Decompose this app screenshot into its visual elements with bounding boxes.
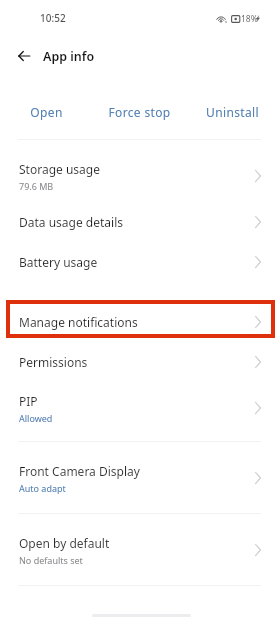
staticText: PIP [19,393,38,409]
button[interactable]: Open [0,97,93,127]
staticText: App info [43,48,95,65]
staticText: 18% [241,13,258,25]
staticText: 79.6 MB [19,180,54,192]
button[interactable]: Manage notifications [0,302,279,342]
button[interactable]: Force stop [93,97,186,127]
button[interactable]: Back [10,42,38,70]
staticText: Open by default [19,535,110,551]
button[interactable]: Battery usage [0,242,279,282]
button[interactable]: Uninstall [186,97,279,127]
staticText: Battery usage [19,254,98,270]
staticText: Open [30,104,63,120]
button[interactable]: PIP [0,382,279,434]
staticText: 10:52 [40,11,66,25]
staticText: Storage usage [19,161,100,177]
staticText: Force stop [108,104,171,120]
button[interactable]: Permissions [0,342,279,382]
staticText: Uninstall [206,104,259,120]
button[interactable]: Open by default [0,524,279,576]
staticText: No defaults set [19,554,83,566]
staticText: Permissions [19,354,88,370]
button[interactable]: Data usage details [0,202,279,242]
staticText: Auto adapt [19,482,66,494]
staticText: Data usage details [19,214,123,230]
staticText: Allowed [19,412,53,424]
staticText: Front Camera Display [19,463,140,479]
button[interactable]: Front Camera Display [0,452,279,504]
button[interactable]: Storage usage [0,150,279,202]
staticText: Manage notifications [19,314,138,330]
